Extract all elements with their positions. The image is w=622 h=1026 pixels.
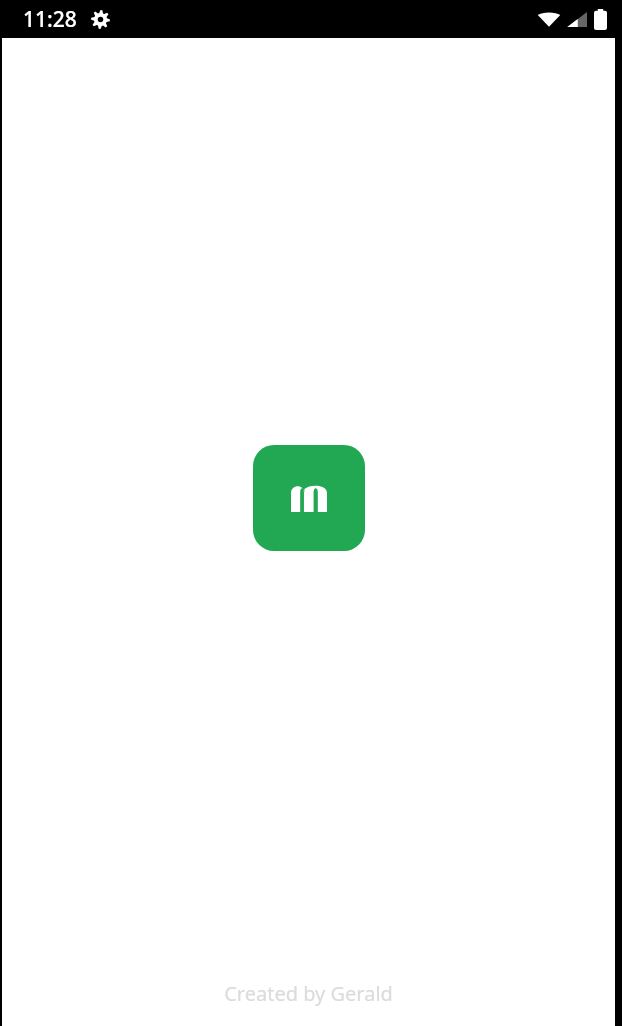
staticText: Created by Gerald <box>224 980 393 1007</box>
button[interactable]: Created by Gerald <box>2 980 615 1007</box>
staticText: 11:28 <box>23 5 77 34</box>
button[interactable]: Settings <box>91 10 110 29</box>
button[interactable]: App logo <box>253 445 365 551</box>
